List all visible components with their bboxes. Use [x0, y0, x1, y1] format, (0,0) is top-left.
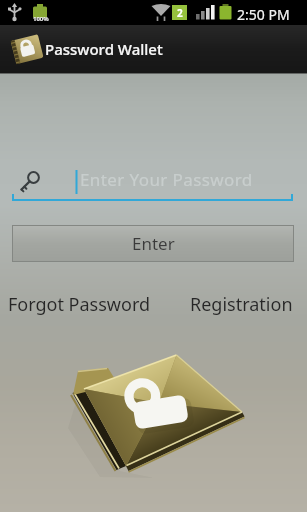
staticText: Enter Your Password — [80, 168, 253, 191]
button[interactable]: Forgot Password — [8, 292, 151, 317]
staticText: 2:50 PM — [237, 5, 290, 24]
staticText: Password Wallet — [45, 39, 163, 59]
staticText: 2 — [177, 6, 183, 20]
button[interactable]: Enter Your Password — [0, 160, 307, 205]
staticText: Forgot Password — [8, 292, 151, 317]
staticText: 100% — [33, 15, 49, 23]
staticText: Registration — [190, 292, 293, 317]
button[interactable]: Registration — [190, 292, 293, 317]
staticText: Enter — [132, 232, 175, 255]
button[interactable]: Enter — [13, 226, 293, 261]
